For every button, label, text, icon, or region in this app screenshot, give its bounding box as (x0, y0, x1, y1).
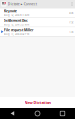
button[interactable]: Keynote (0, 8, 75, 17)
button[interactable]: Home (25, 111, 50, 116)
button[interactable]: More options (69, 0, 75, 8)
staticText: 7:32 (69, 21, 73, 24)
button[interactable]: Settlement Doc (0, 18, 75, 27)
staticText: New Dictation (24, 100, 50, 105)
button[interactable]: Back (0, 111, 25, 116)
staticText: Aug 12, 2014 9:21 AM (4, 23, 29, 26)
button[interactable]: New Dictation (0, 97, 75, 108)
staticText: Aug 12, 2014 8:11 AM (4, 13, 29, 17)
button[interactable]: Recent apps (50, 111, 75, 116)
staticText: Aug 11, 2014 4:02 PM (4, 32, 29, 36)
staticText: Dictate ▸ Connect (8, 2, 37, 6)
staticText: Keynote (4, 9, 17, 13)
button[interactable]: File request Miller (0, 27, 75, 36)
staticText: File request Miller (4, 28, 33, 32)
staticText: 4:06 (69, 11, 73, 15)
staticText: Settlement Doc (4, 18, 28, 23)
staticText: 1:34 (69, 30, 73, 33)
